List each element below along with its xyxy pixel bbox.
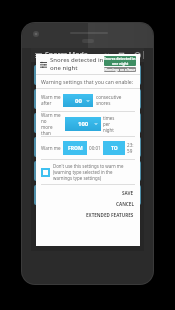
staticText: Warn me <box>41 145 61 151</box>
button[interactable]: Menu <box>33 50 43 60</box>
button[interactable] <box>34 113 141 133</box>
staticText: FROM <box>68 145 83 152</box>
button[interactable]: Info <box>132 50 142 60</box>
staticText: after <box>41 100 52 106</box>
button[interactable] <box>34 137 141 157</box>
button[interactable]: Don't use this settings to warn me <box>41 160 135 184</box>
staticText: 100 <box>78 120 89 128</box>
staticText: night <box>103 127 114 133</box>
button[interactable]: Warnings on a hour <box>104 67 136 72</box>
button[interactable] <box>34 65 141 85</box>
button[interactable]: CANCEL <box>36 198 140 209</box>
staticText: 00 <box>75 97 82 105</box>
staticText: CANCEL <box>116 201 134 207</box>
button[interactable] <box>34 161 141 181</box>
button[interactable] <box>34 185 141 205</box>
staticText: Snores detected in <box>104 56 136 61</box>
staticText: warnings type settings) <box>53 175 102 181</box>
button[interactable] <box>34 89 141 109</box>
staticText: Snorer Mode <box>45 50 88 60</box>
button[interactable]: TO <box>103 141 125 155</box>
staticText: snores <box>96 100 111 106</box>
button[interactable]: Snores detected in <box>104 56 136 66</box>
staticText: Don't use this settings to warn me <box>53 163 124 169</box>
button[interactable]: SAVE <box>36 187 140 198</box>
staticText: more than <box>41 124 63 136</box>
staticText: one night <box>50 64 78 72</box>
button[interactable]: 100 <box>65 117 101 131</box>
staticText: (warning type selected in the <box>53 169 113 175</box>
staticText: one night <box>112 61 129 66</box>
staticText: Snores detected in <box>50 56 104 64</box>
staticText: Warn me no <box>41 112 63 124</box>
button[interactable]: Stats <box>116 50 126 60</box>
staticText: Warn me <box>41 94 61 100</box>
button[interactable]: Mute <box>100 50 110 60</box>
staticText: 23:59 <box>127 142 135 154</box>
staticText: consecutive <box>96 94 122 100</box>
staticText: EXTENDED FEATURES <box>86 212 134 218</box>
staticText: per <box>103 121 110 127</box>
staticText: Warnings on a hour <box>104 68 136 72</box>
staticText: SAVE <box>122 190 134 196</box>
button[interactable]: FROM <box>63 141 87 155</box>
staticText: Warning settings that you can enable: <box>41 78 134 85</box>
button[interactable]: EXTENDED FEATURES <box>36 209 140 220</box>
staticText: 00:01 <box>89 145 101 151</box>
staticText: TO <box>111 145 118 152</box>
button[interactable]: 00 <box>63 94 93 107</box>
staticText: times <box>103 115 115 121</box>
